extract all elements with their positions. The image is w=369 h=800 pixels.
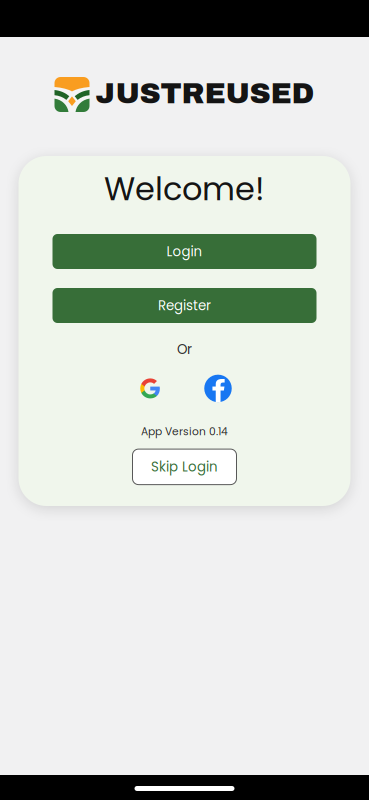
staticText: Login: [166, 242, 202, 261]
button[interactable]: Continue with Facebook: [204, 375, 232, 402]
staticText: Welcome!: [104, 167, 265, 211]
staticText: Register: [158, 296, 211, 315]
button[interactable]: Continue with Google: [137, 375, 163, 401]
button[interactable]: Skip Login: [132, 449, 236, 485]
button[interactable]: Login: [52, 234, 316, 269]
button[interactable]: Register: [52, 288, 316, 323]
staticText: Skip Login: [151, 457, 218, 476]
staticText: JUSTREUSED: [95, 77, 314, 109]
staticText: App Version 0.14: [141, 424, 228, 439]
staticText: Or: [177, 340, 192, 359]
